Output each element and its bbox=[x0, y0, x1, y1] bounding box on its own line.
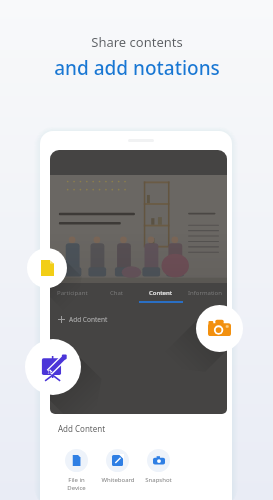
button[interactable]: Snapshot bbox=[196, 305, 243, 352]
staticText: Add Content bbox=[58, 423, 106, 434]
staticText: and add notations bbox=[54, 55, 220, 81]
button[interactable]: File in Device bbox=[58, 449, 95, 492]
staticText: Information bbox=[188, 289, 222, 297]
button[interactable]: Information bbox=[183, 286, 227, 303]
staticText: Snapshot bbox=[145, 476, 172, 484]
staticText: Content bbox=[149, 289, 173, 297]
button[interactable]: Chat bbox=[95, 286, 139, 303]
button[interactable]: Whiteboard bbox=[25, 339, 81, 395]
button[interactable]: Whiteboard bbox=[99, 449, 136, 484]
staticText: Share contents bbox=[91, 33, 183, 51]
staticText: Whiteboard bbox=[101, 476, 135, 484]
staticText: Participant bbox=[57, 289, 88, 297]
button[interactable]: Add Content bbox=[50, 309, 227, 329]
button[interactable]: Add file bbox=[27, 248, 67, 288]
staticText: File in Device bbox=[67, 476, 86, 492]
staticText: Chat bbox=[110, 289, 124, 297]
button[interactable]: Snapshot bbox=[140, 449, 177, 484]
staticText: Add Content bbox=[69, 315, 108, 324]
button[interactable]: Participant bbox=[50, 286, 95, 303]
button[interactable]: Content bbox=[139, 286, 183, 303]
